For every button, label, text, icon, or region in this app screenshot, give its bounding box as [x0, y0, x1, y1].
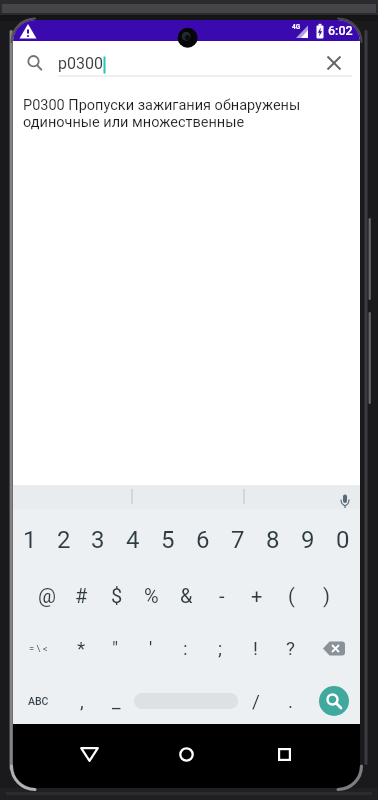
staticText: 2 [57, 526, 71, 554]
staticText: & [180, 584, 193, 607]
staticText: ? [286, 637, 295, 659]
staticText: 8 [266, 526, 280, 554]
staticText: ) [323, 584, 330, 607]
staticText: " [112, 637, 119, 659]
staticText: , [80, 690, 84, 712]
button[interactable]: = \ < [13, 623, 64, 673]
staticText: * [77, 637, 86, 659]
button[interactable]: @ [29, 570, 64, 620]
staticText: 6 [196, 526, 210, 554]
button[interactable] [65, 730, 113, 778]
button[interactable]: / [238, 677, 273, 724]
staticText: 3 [91, 526, 105, 554]
button[interactable]: 2 [47, 514, 81, 566]
button[interactable]: 0 [325, 514, 360, 566]
staticText: 4 [126, 526, 140, 554]
staticText: 0 [336, 526, 350, 554]
button[interactable] [320, 49, 350, 79]
button[interactable]: ' [133, 623, 168, 673]
button[interactable] [333, 485, 360, 509]
button[interactable]: 9 [290, 514, 325, 566]
button[interactable]: % [134, 570, 169, 620]
staticText: . [288, 690, 294, 712]
button[interactable]: , [64, 677, 99, 724]
button[interactable]: 8 [255, 514, 290, 566]
staticText: 4G [292, 23, 301, 31]
staticText: 6:02 [328, 23, 353, 38]
staticText: 7 [231, 526, 245, 554]
button[interactable]: P0300 Пропуски зажигания обнаружены один… [23, 97, 353, 130]
button[interactable]: # [64, 570, 99, 620]
button[interactable] [308, 677, 360, 724]
staticText: + [251, 584, 263, 607]
button[interactable] [260, 730, 308, 778]
staticText: = \ < [29, 643, 48, 654]
button[interactable]: ! [238, 623, 273, 673]
staticText: ' [149, 637, 153, 659]
button[interactable]: 5 [150, 514, 185, 566]
staticText: p0300 [58, 54, 103, 73]
button[interactable]: $ [99, 570, 134, 620]
staticText: 5 [161, 526, 175, 554]
button[interactable]: * [64, 623, 98, 673]
button[interactable]: : [168, 623, 203, 673]
button[interactable] [134, 677, 238, 724]
button[interactable]: ; [203, 623, 238, 673]
button[interactable]: " [98, 623, 133, 673]
button[interactable] [162, 730, 210, 778]
button[interactable]: _ [99, 677, 134, 724]
button[interactable]: . [273, 677, 308, 724]
staticText: $ [111, 584, 123, 607]
staticText: : [183, 637, 188, 659]
staticText: 9 [301, 526, 315, 554]
staticText: P0300 Пропуски зажигания обнаружены один… [23, 97, 301, 130]
staticText: ABC [28, 695, 49, 707]
staticText: % [144, 584, 159, 607]
button[interactable]: 3 [81, 514, 115, 566]
button[interactable]: 4 [115, 514, 150, 566]
staticText: / [252, 690, 260, 712]
button[interactable]: ? [273, 623, 308, 673]
button[interactable]: & [169, 570, 204, 620]
button[interactable]: ) [309, 570, 344, 620]
button[interactable]: ( [274, 570, 309, 620]
staticText: @ [38, 584, 56, 607]
staticText: ! [253, 637, 258, 659]
button[interactable]: 6 [185, 514, 220, 566]
button[interactable]: 7 [220, 514, 255, 566]
button[interactable] [308, 623, 360, 673]
staticText: # [75, 584, 88, 607]
button[interactable]: 1 [13, 514, 47, 566]
staticText: 1 [23, 526, 37, 554]
staticText: - [219, 584, 225, 607]
button[interactable]: - [204, 570, 239, 620]
staticText: _ [112, 690, 121, 712]
button[interactable]: p0300 [13, 41, 360, 94]
button[interactable]: + [239, 570, 274, 620]
button[interactable]: ABC [13, 677, 64, 724]
staticText: ( [288, 584, 295, 607]
staticText: ; [218, 637, 223, 659]
